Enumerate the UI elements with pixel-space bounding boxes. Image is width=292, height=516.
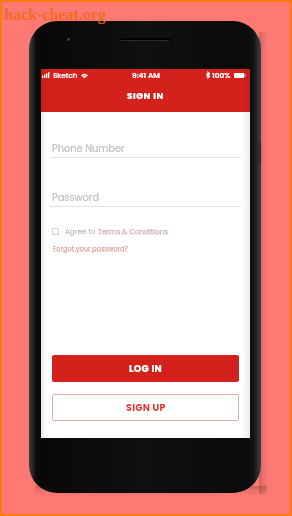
staticText: Sketch [53,70,78,80]
staticText: SIGN IN [127,90,164,103]
button[interactable]: Agree to [52,226,169,236]
staticText: Phone Number [52,142,125,156]
staticText: Terms & Conditions [98,226,169,236]
staticText: SIGN UP [126,401,166,414]
staticText: 9:41 AM [132,70,160,80]
button[interactable]: SIGN UP [52,394,239,421]
button[interactable]: Forgot your password? [53,244,129,253]
staticText: 100% [212,70,231,80]
staticText: Password [52,191,100,205]
staticText: Forgot your password? [53,244,129,253]
staticText: Agree to [65,226,98,236]
button[interactable]: LOG IN [52,355,239,382]
button[interactable]: SIGN IN [41,82,250,112]
staticText: hack-cheat.org [4,6,106,24]
staticText: LOG IN [129,362,162,375]
